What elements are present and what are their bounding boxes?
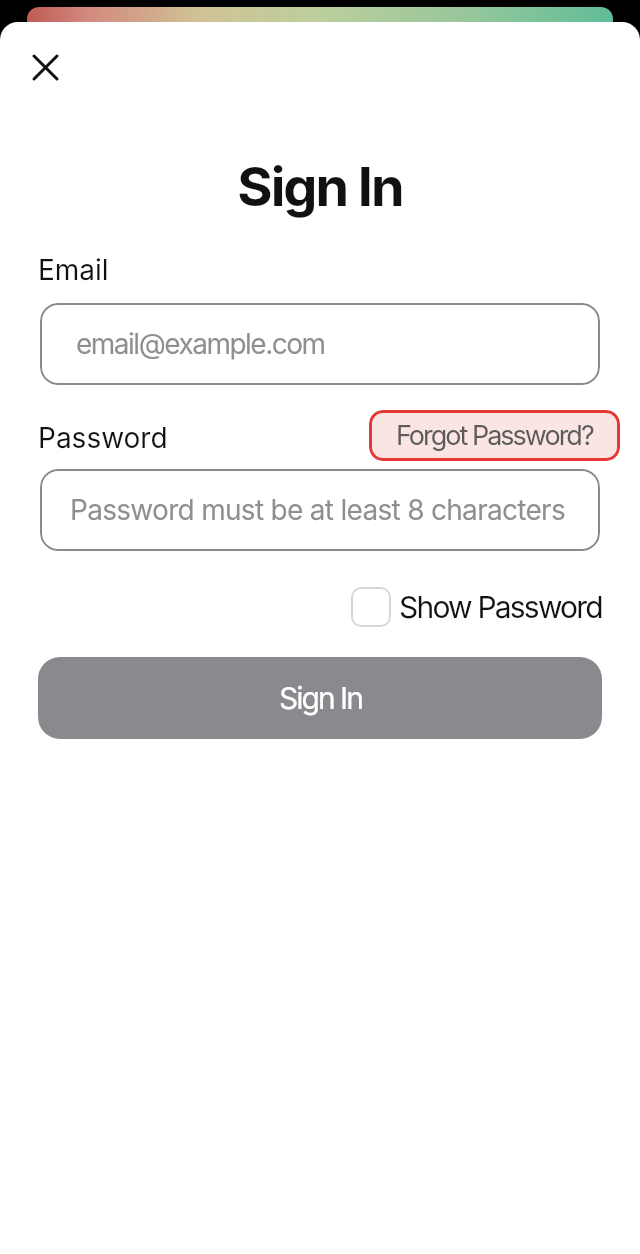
- button[interactable]: email@example.com: [40, 303, 600, 385]
- button[interactable]: [351, 587, 391, 627]
- button[interactable]: Forgot Password?: [369, 410, 620, 461]
- staticText: Show Password: [399, 589, 602, 625]
- staticText: Forgot Password?: [396, 419, 593, 452]
- button[interactable]: Sign In: [38, 657, 602, 739]
- staticText: Email: [38, 253, 109, 287]
- staticText: Sign In: [0, 154, 640, 219]
- button[interactable]: Password must be at least 8 characters: [40, 469, 600, 551]
- staticText: Sign In: [279, 680, 362, 716]
- staticText: Password must be at least 8 characters: [70, 493, 566, 527]
- staticText: email@example.com: [76, 327, 325, 361]
- staticText: Password: [38, 421, 168, 455]
- button[interactable]: [34, 56, 57, 79]
